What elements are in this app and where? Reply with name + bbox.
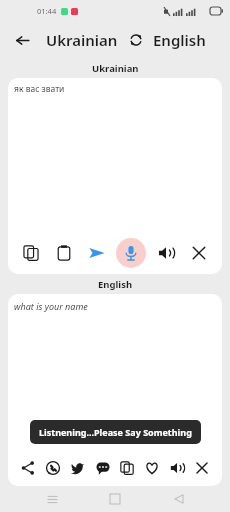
button[interactable]: Back — [167, 487, 191, 511]
button[interactable]: English — [153, 30, 206, 50]
staticText: Ukrainian — [92, 62, 139, 75]
button[interactable]: Recents — [40, 487, 64, 511]
button[interactable]: Copy — [116, 457, 138, 479]
staticText: English — [98, 278, 133, 291]
staticText: Listnening...Please Say Something — [39, 426, 192, 438]
button[interactable]: Share — [17, 457, 39, 479]
button[interactable]: Favorite — [141, 457, 163, 479]
button[interactable]: Clear — [186, 240, 212, 266]
button[interactable]: Swap languages — [126, 30, 146, 50]
button[interactable]: Home — [103, 487, 127, 511]
button[interactable]: Speak — [166, 457, 188, 479]
button[interactable]: Paste — [51, 240, 77, 266]
button[interactable]: Translate — [84, 240, 110, 266]
button[interactable]: Close — [191, 457, 213, 479]
staticText: Ukrainian — [46, 30, 118, 50]
button[interactable]: Copy — [18, 240, 44, 266]
button[interactable]: Speak — [153, 240, 179, 266]
staticText: як вас звати — [14, 83, 65, 95]
staticText: 01:44 — [37, 6, 57, 16]
staticText: English — [153, 30, 206, 50]
button[interactable]: Back — [10, 28, 34, 52]
button[interactable]: Ukrainian — [46, 30, 118, 50]
button[interactable]: WhatsApp — [42, 457, 64, 479]
staticText: what is your name — [14, 300, 88, 312]
button[interactable]: Voice input — [116, 238, 146, 268]
button[interactable]: Twitter — [67, 457, 89, 479]
button[interactable]: SMS — [92, 457, 114, 479]
